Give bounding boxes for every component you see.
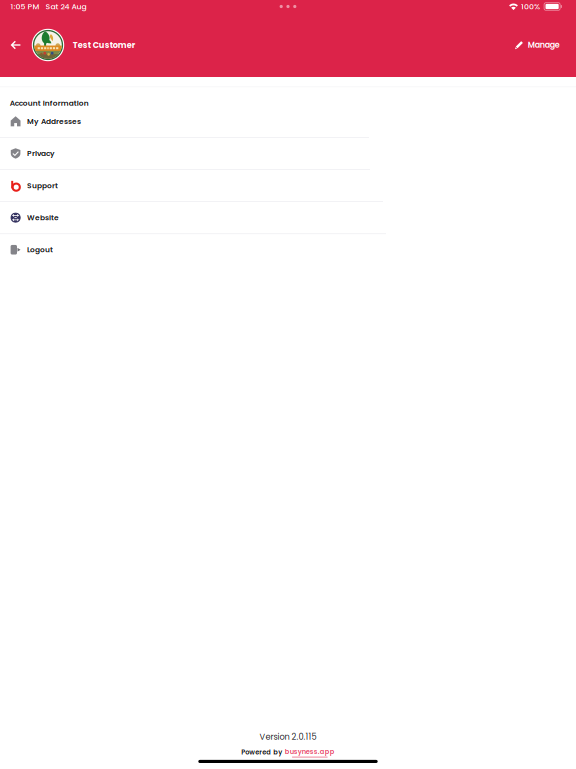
staticText: Powered by [241,747,282,757]
button[interactable]: Support [0,170,576,201]
staticText: Account Information [10,98,89,108]
staticText: busyness.app [285,747,335,756]
staticText: Website [27,212,59,223]
staticText: Privacy [27,148,55,159]
staticText: Manage [528,39,560,51]
staticText: Version 2.0.115 [259,731,316,743]
button[interactable]: Back [8,30,23,60]
button[interactable]: busyness.app [285,747,335,757]
button[interactable]: My Addresses [0,106,576,137]
staticText: Sat 24 Aug [46,1,87,12]
staticText: Logout [27,244,53,255]
button[interactable]: Logout [0,234,576,265]
button[interactable]: Website [0,202,576,233]
staticText: Support [27,180,58,191]
staticText: My Addresses [27,116,81,127]
staticText: 1:05 PM [11,1,40,12]
staticText: Test Customer [73,39,136,51]
staticText: 100% [521,1,540,12]
button[interactable]: Privacy [0,138,576,169]
button[interactable]: Manage [514,30,561,60]
